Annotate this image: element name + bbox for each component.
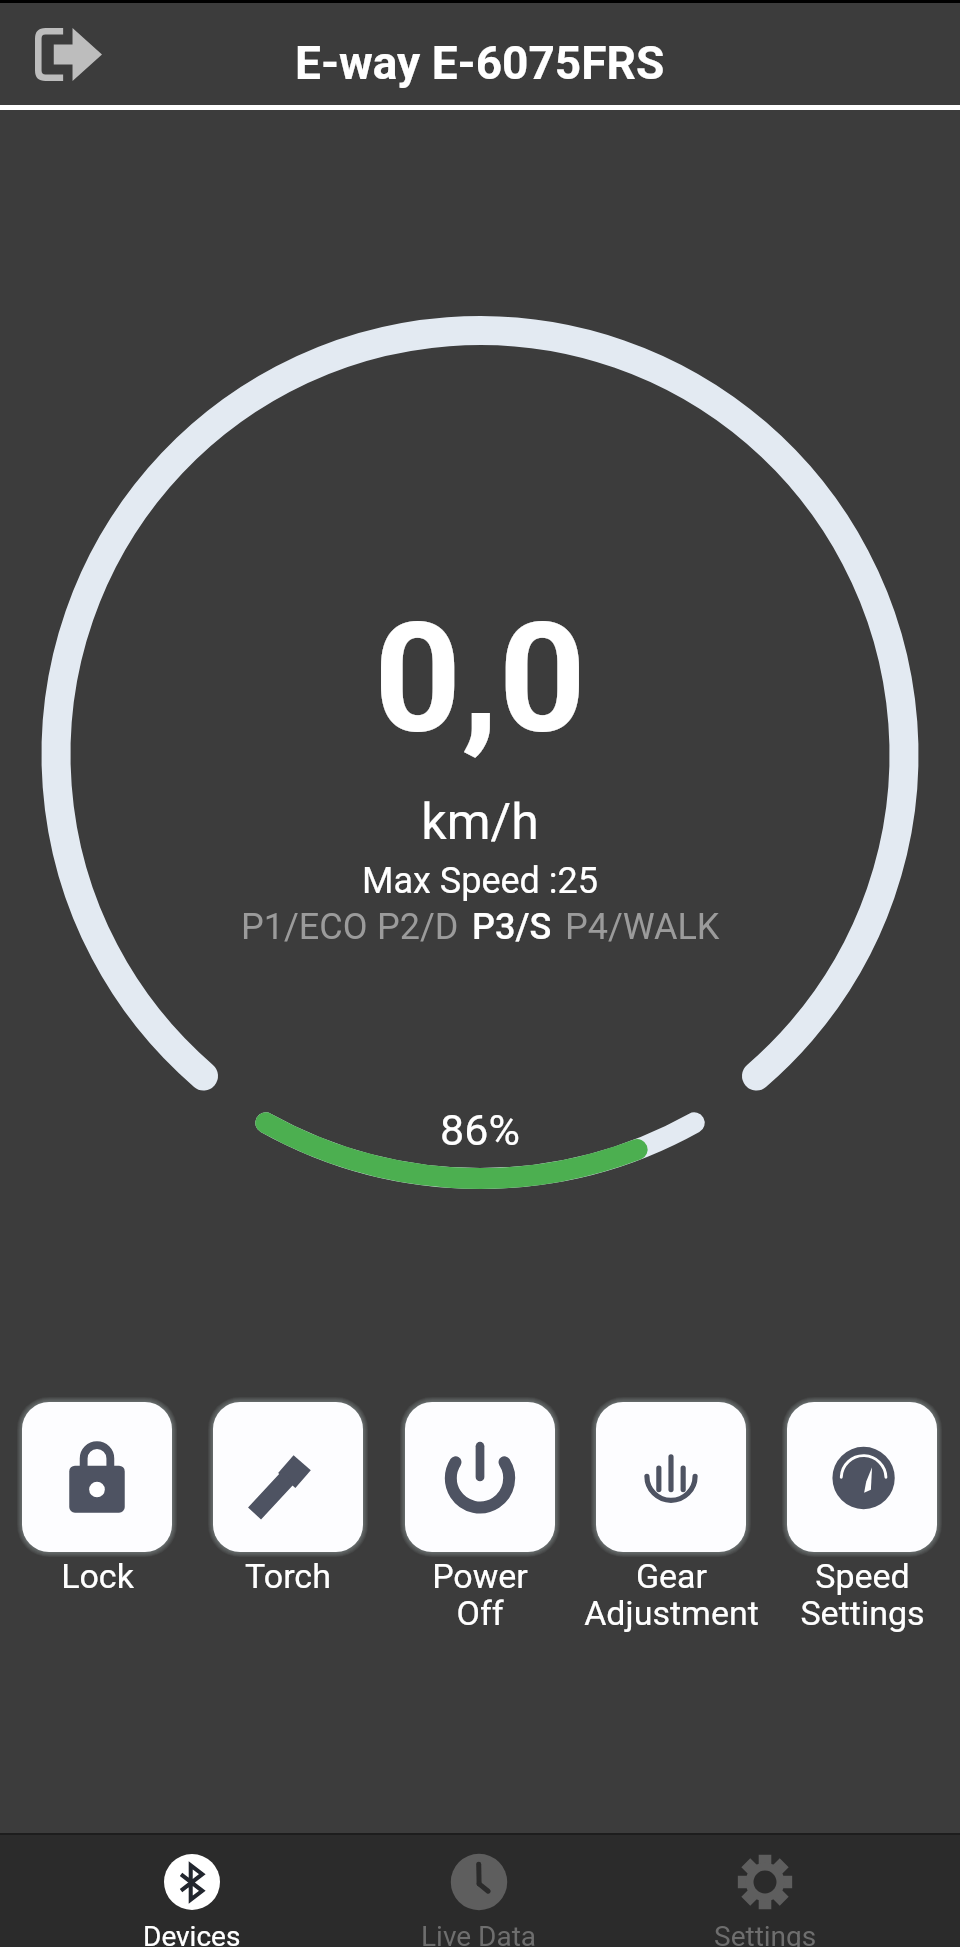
staticText: Max Speed :25 <box>0 860 960 902</box>
staticText: P1/ECO <box>241 906 368 948</box>
staticText: P2/D <box>377 906 459 948</box>
button[interactable]: Speed Settings <box>787 1402 937 1552</box>
staticText: Power Off <box>432 1556 528 1633</box>
staticText: 0,0 <box>0 590 960 768</box>
staticText: P4/WALK <box>565 906 720 948</box>
staticText: Devices <box>143 1920 241 1947</box>
staticText: Live Data <box>421 1920 537 1947</box>
staticText: Lock <box>61 1556 134 1596</box>
staticText: km/h <box>0 793 960 852</box>
staticText: E-way E-6075FRS <box>295 36 665 90</box>
staticText: P3/S <box>472 906 552 948</box>
button[interactable]: Live Data <box>336 1835 622 1947</box>
button[interactable]: Power Off <box>405 1402 555 1552</box>
button[interactable]: Devices <box>49 1835 335 1947</box>
staticText: 86% <box>0 1105 960 1155</box>
staticText: Speed Settings <box>800 1556 925 1633</box>
button[interactable]: Torch <box>213 1402 363 1552</box>
staticText: Settings <box>714 1920 817 1947</box>
button[interactable]: Lock <box>22 1402 172 1552</box>
staticText: Torch <box>245 1556 331 1596</box>
button[interactable]: Log out <box>15 8 122 101</box>
staticText: Gear Adjustment <box>584 1556 759 1633</box>
button[interactable]: Settings <box>622 1835 908 1947</box>
button[interactable]: Gear Adjustment <box>596 1402 746 1552</box>
